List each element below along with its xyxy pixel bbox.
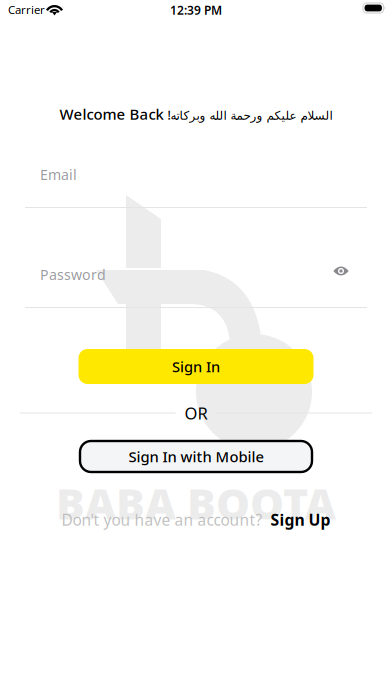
staticText: Sign Up (270, 509, 330, 530)
button[interactable]: Don't you have an account? (61, 509, 330, 530)
staticText: Password (40, 265, 106, 284)
staticText: OR (184, 402, 207, 424)
staticText: Carrier (8, 2, 45, 17)
staticText: Welcome Back !السلام عليكم ورحمة الله وب… (59, 104, 332, 124)
staticText: Email (40, 165, 77, 184)
button[interactable]: Sign In (78, 349, 313, 384)
staticText: 12:39 PM (170, 2, 222, 18)
button[interactable]: Sign In with Mobile (80, 441, 312, 472)
staticText: BABA BOOTA (56, 474, 336, 532)
button[interactable]: Show password (325, 255, 357, 287)
staticText: Sign In (172, 356, 220, 376)
staticText: Sign In with Mobile (128, 446, 263, 467)
staticText: Don't you have an account? (61, 509, 262, 530)
